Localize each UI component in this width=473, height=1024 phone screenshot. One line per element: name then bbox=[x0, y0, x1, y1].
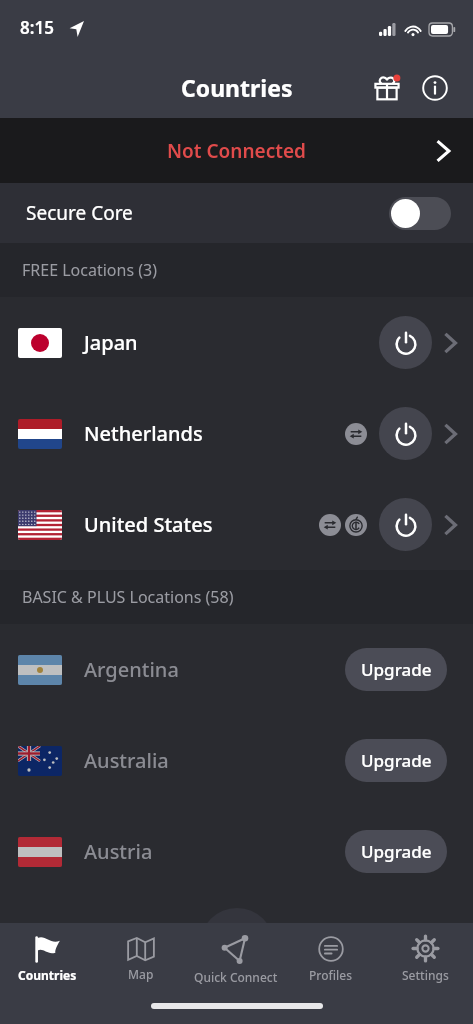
staticText: Profiles bbox=[309, 967, 352, 983]
staticText: Map bbox=[128, 966, 154, 982]
staticText: Not Connected bbox=[167, 138, 306, 164]
button[interactable]: Upgrade bbox=[345, 830, 447, 873]
staticText: Argentina bbox=[84, 656, 179, 683]
staticText: Settings bbox=[402, 967, 449, 983]
button[interactable]: United States bbox=[0, 479, 473, 570]
button[interactable]: Settings bbox=[378, 923, 473, 995]
staticText: Austria bbox=[84, 838, 153, 865]
button[interactable]: Map bbox=[94, 923, 188, 995]
staticText: BASIC & PLUS Locations (58) bbox=[22, 586, 234, 608]
staticText: Countries bbox=[18, 967, 77, 983]
staticText: United States bbox=[84, 511, 213, 538]
button[interactable]: Upgrade bbox=[345, 739, 447, 782]
staticText: 8:15 bbox=[20, 16, 54, 39]
button[interactable]: Australia bbox=[0, 715, 473, 806]
staticText: Japan bbox=[84, 329, 138, 356]
staticText: Netherlands bbox=[84, 420, 203, 447]
staticText: Secure Core bbox=[26, 200, 133, 226]
button[interactable]: Connect to Netherlands bbox=[379, 407, 432, 460]
button[interactable]: Not Connected bbox=[0, 118, 473, 183]
button[interactable]: Connect to Japan bbox=[379, 316, 432, 369]
button[interactable]: Japan bbox=[0, 297, 473, 388]
button[interactable]: Connect to United States bbox=[379, 498, 432, 551]
button[interactable]: Secure Core bbox=[0, 183, 473, 243]
staticText: Australia bbox=[84, 747, 169, 774]
button[interactable]: Quick Connect bbox=[188, 923, 283, 995]
button[interactable]: Austria bbox=[0, 806, 473, 897]
button[interactable]: Argentina bbox=[0, 624, 473, 715]
button[interactable]: Countries bbox=[0, 923, 94, 995]
staticText: Countries bbox=[181, 72, 293, 103]
staticText: Upgrade bbox=[361, 749, 432, 772]
staticText: Upgrade bbox=[361, 840, 432, 863]
button[interactable]: Promo offers bbox=[363, 64, 411, 112]
button[interactable]: Profiles bbox=[283, 923, 378, 995]
button[interactable]: Information bbox=[411, 64, 459, 112]
staticText: Quick Connect bbox=[194, 969, 278, 985]
staticText: FREE Locations (3) bbox=[22, 259, 157, 281]
button[interactable]: Upgrade bbox=[345, 648, 447, 691]
staticText: Upgrade bbox=[361, 658, 432, 681]
button[interactable]: Netherlands bbox=[0, 388, 473, 479]
